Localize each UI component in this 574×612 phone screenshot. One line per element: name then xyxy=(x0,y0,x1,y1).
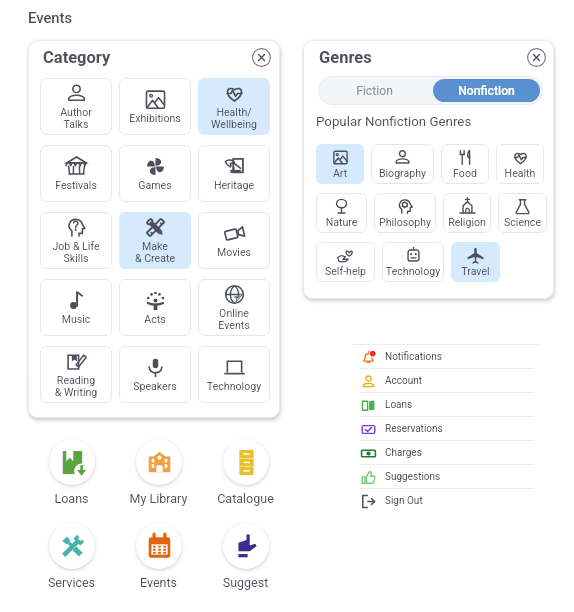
staticText: Category xyxy=(43,48,111,67)
button[interactable]: Job & Life Skills xyxy=(40,212,112,269)
staticText: Loans xyxy=(385,399,413,411)
button[interactable]: Online Events xyxy=(198,279,270,336)
staticText: Religion xyxy=(443,216,491,228)
button[interactable]: Biography xyxy=(371,144,434,184)
button[interactable]: Travel xyxy=(451,242,500,282)
button[interactable]: Exhibitions xyxy=(119,78,191,135)
staticText: Nonfiction xyxy=(458,84,515,98)
staticText: Art xyxy=(316,167,364,179)
button[interactable]: Acts xyxy=(119,279,191,336)
button[interactable]: Account xyxy=(360,369,534,392)
staticText: Heritage xyxy=(198,179,270,191)
button[interactable]: Technology xyxy=(198,346,270,403)
staticText: Notifications xyxy=(385,351,442,363)
button[interactable]: Food xyxy=(441,144,489,184)
button[interactable]: Heritage xyxy=(198,145,270,202)
button[interactable]: Sign Out xyxy=(360,489,534,512)
staticText: Suggest xyxy=(202,575,289,590)
staticText: Technology xyxy=(382,265,444,277)
staticText: Health/ Wellbeing xyxy=(198,106,270,130)
button[interactable]: Nature xyxy=(316,193,367,233)
button[interactable]: Loans xyxy=(360,393,534,416)
staticText: Health xyxy=(496,167,544,179)
button[interactable]: Notifications xyxy=(360,345,534,368)
staticText: Account xyxy=(385,375,423,387)
staticText: Exhibitions xyxy=(119,112,191,124)
staticText: Make & Create xyxy=(119,240,191,264)
button[interactable]: Close xyxy=(249,45,273,69)
staticText: Online Events xyxy=(198,307,270,331)
button[interactable]: Events xyxy=(115,523,202,607)
button[interactable]: Movies xyxy=(198,212,270,269)
button[interactable]: Speakers xyxy=(119,346,191,403)
staticText: Reading & Writing xyxy=(40,374,112,398)
staticText: Travel xyxy=(451,265,500,277)
button[interactable]: Author Talks xyxy=(40,78,112,135)
button[interactable]: Science xyxy=(498,193,547,233)
staticText: Author Talks xyxy=(40,106,112,130)
staticText: Events xyxy=(28,9,73,26)
staticText: Catalogue xyxy=(202,491,289,506)
staticText: Speakers xyxy=(119,380,191,392)
staticText: Biography xyxy=(371,167,434,179)
button[interactable]: Suggestions xyxy=(360,465,534,488)
staticText: Movies xyxy=(198,246,270,258)
button[interactable]: Games xyxy=(119,145,191,202)
staticText: Philosophy xyxy=(374,216,436,228)
button[interactable]: Festivals xyxy=(40,145,112,202)
staticText: My Library xyxy=(115,491,202,506)
staticText: Genres xyxy=(319,48,372,67)
staticText: Reservations xyxy=(385,423,443,435)
button[interactable]: Health/ Wellbeing xyxy=(198,78,270,135)
staticText: Nature xyxy=(316,216,367,228)
button[interactable]: Fiction xyxy=(318,76,430,105)
staticText: Services xyxy=(28,575,115,590)
button[interactable]: Catalogue xyxy=(202,439,289,523)
staticText: Loans xyxy=(28,491,115,506)
button[interactable]: Charges xyxy=(360,441,534,464)
button[interactable]: Suggest xyxy=(202,523,289,607)
staticText: Science xyxy=(498,216,547,228)
button[interactable]: Loans xyxy=(28,439,115,523)
staticText: Charges xyxy=(385,447,422,459)
button[interactable]: My Library xyxy=(115,439,202,523)
staticText: Music xyxy=(40,313,112,325)
staticText: Fiction xyxy=(356,84,393,98)
button[interactable]: Services xyxy=(28,523,115,607)
staticText: Suggestions xyxy=(385,471,441,483)
staticText: Job & Life Skills xyxy=(40,240,112,264)
button[interactable]: Philosophy xyxy=(374,193,436,233)
button[interactable]: Close xyxy=(524,45,548,69)
button[interactable]: Nonfiction xyxy=(433,79,540,102)
button[interactable]: Self-help xyxy=(316,242,375,282)
button[interactable]: Health xyxy=(496,144,544,184)
staticText: Food xyxy=(441,167,489,179)
staticText: Acts xyxy=(119,313,191,325)
staticText: Festivals xyxy=(40,179,112,191)
staticText: Popular Nonfiction Genres xyxy=(316,114,472,130)
staticText: Self-help xyxy=(316,265,375,277)
staticText: Technology xyxy=(198,380,270,392)
staticText: Sign Out xyxy=(385,495,423,507)
button[interactable]: Music xyxy=(40,279,112,336)
button[interactable]: Religion xyxy=(443,193,491,233)
button[interactable]: Technology xyxy=(382,242,444,282)
staticText: Events xyxy=(115,575,202,590)
staticText: Games xyxy=(119,179,191,191)
button[interactable]: Make & Create xyxy=(119,212,191,269)
button[interactable]: Art xyxy=(316,144,364,184)
button[interactable]: Reading & Writing xyxy=(40,346,112,403)
button[interactable]: Reservations xyxy=(360,417,534,440)
